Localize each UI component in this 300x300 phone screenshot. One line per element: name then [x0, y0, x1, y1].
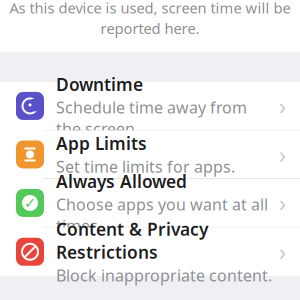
staticText: Always Allowed — [56, 170, 187, 193]
staticText: › — [279, 237, 286, 267]
button[interactable]: App Limits — [0, 130, 300, 179]
staticText: ✓ — [24, 195, 36, 211]
staticText: Block inappropriate content. — [56, 265, 272, 286]
staticText: As this device is used, screen time will… — [9, 0, 290, 17]
staticText: Downtime — [56, 73, 143, 96]
button[interactable]: Content & Privacy Restrictions — [0, 227, 300, 276]
staticText: App Limits — [56, 132, 147, 155]
staticText: Schedule time away from the screen. — [56, 97, 247, 139]
staticText: Content & Privacy Restrictions — [56, 218, 208, 264]
staticText: › — [279, 188, 286, 218]
staticText: Choose apps you want at all times. — [56, 194, 268, 236]
staticText: reported here. — [100, 18, 199, 38]
staticText: › — [279, 139, 286, 169]
button[interactable]: Downtime — [0, 82, 300, 130]
button[interactable]: ✓ — [0, 179, 300, 227]
staticText: › — [279, 91, 286, 121]
staticText: Set time limits for apps. — [56, 156, 235, 177]
